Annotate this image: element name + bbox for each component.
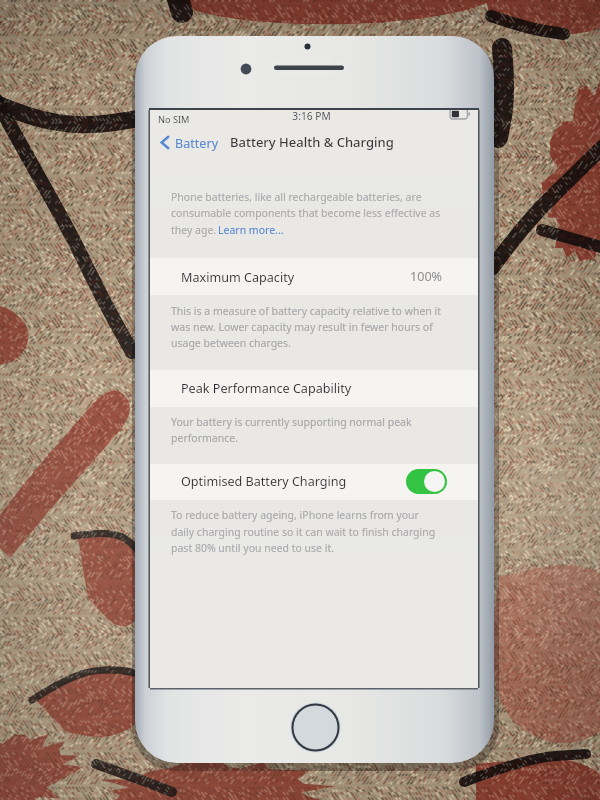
staticText: Phone batteries, like all rechargeable b… bbox=[171, 190, 422, 204]
staticText: consumable components that become less e… bbox=[171, 206, 441, 220]
staticText: Your battery is currently supporting nor… bbox=[171, 415, 412, 429]
staticText: Optimised Battery Charging bbox=[181, 473, 347, 490]
staticText: Peak Performance Capability bbox=[181, 380, 352, 397]
button[interactable] bbox=[156, 131, 222, 155]
staticText: 3:16 PM bbox=[292, 109, 331, 123]
button[interactable] bbox=[150, 258, 478, 295]
button[interactable] bbox=[150, 464, 478, 500]
staticText: To reduce battery ageing, iPhone learns … bbox=[171, 508, 419, 522]
staticText: Learn more... bbox=[218, 223, 284, 237]
staticText: daily charging routine so it can wait to… bbox=[171, 525, 436, 539]
staticText: performance. bbox=[171, 431, 238, 445]
button[interactable]: Optimised Battery Charging bbox=[406, 469, 447, 494]
button[interactable]: Learn more... bbox=[218, 221, 284, 238]
staticText: past 80% until you need to use it. bbox=[171, 541, 335, 555]
staticText: Battery bbox=[175, 135, 219, 152]
staticText: 100% bbox=[410, 268, 443, 285]
staticText: No SIM bbox=[158, 113, 190, 126]
staticText: was new. Lower capacity may result in fe… bbox=[171, 320, 433, 334]
staticText: usage between charges. bbox=[171, 336, 291, 350]
staticText: Battery Health & Charging bbox=[230, 133, 394, 151]
button[interactable] bbox=[150, 370, 478, 407]
button[interactable]: Home bbox=[292, 704, 339, 751]
staticText: This is a measure of battery capacity re… bbox=[171, 304, 442, 318]
staticText: Maximum Capacity bbox=[181, 269, 295, 286]
staticText: they age. bbox=[171, 223, 219, 237]
